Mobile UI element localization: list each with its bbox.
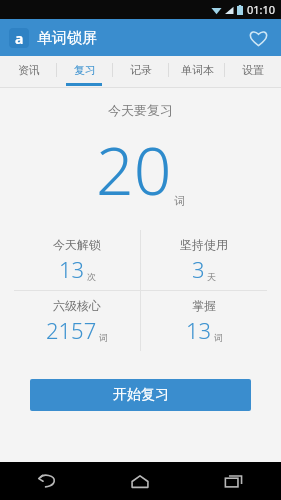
button[interactable]: Recents [187,462,281,500]
staticText: 词 [174,194,185,208]
button[interactable]: 坚持使用 [141,230,267,290]
button[interactable]: Favorite [243,23,273,53]
staticText: 设置 [242,63,264,77]
button[interactable]: 今天解锁 [14,230,140,290]
button[interactable]: 开始复习 [30,379,251,411]
button[interactable]: 掌握 [141,291,267,351]
staticText: 掌握 [192,298,216,313]
button[interactable]: 六级核心 [14,291,140,351]
button[interactable]: Home [93,462,187,500]
staticText: 3 [192,254,205,284]
button[interactable]: 设置 [225,56,281,83]
staticText: 词 [99,332,108,343]
button[interactable]: 单词本 [169,56,225,83]
button[interactable]: a [9,28,97,48]
staticText: 单词本 [181,63,214,77]
staticText: 13 [186,315,212,345]
staticText: 今天要复习 [108,102,173,118]
staticText: 记录 [130,63,152,77]
staticText: 20 [96,124,172,214]
button[interactable]: 资讯 [0,56,57,83]
button[interactable]: 记录 [113,56,169,83]
staticText: 天 [207,271,216,282]
staticText: 复习 [74,63,96,77]
button[interactable]: 复习 [57,56,113,83]
staticText: 13 [59,254,85,284]
staticText: 今天解锁 [53,237,101,252]
button[interactable]: Back [0,462,93,500]
staticText: 2157 [46,315,97,345]
staticText: 资讯 [18,63,40,77]
staticText: 开始复习 [113,386,169,404]
staticText: 单词锁屏 [37,29,97,48]
staticText: 次 [87,271,96,282]
staticText: 01:10 [247,2,276,17]
staticText: a [15,29,24,48]
staticText: 词 [214,332,223,343]
staticText: 六级核心 [53,298,101,313]
staticText: 坚持使用 [180,237,228,252]
